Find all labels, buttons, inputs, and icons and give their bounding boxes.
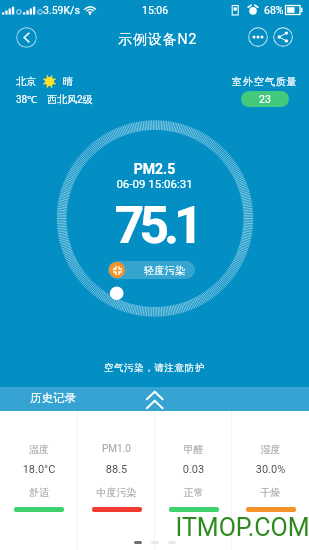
button[interactable]: 轻度污染 (108, 261, 195, 279)
staticText: 西北风2级 (47, 93, 93, 106)
staticText: 干燥 (232, 486, 309, 499)
staticText: 历史记录 (30, 391, 76, 405)
staticText: 18.0°C (0, 463, 78, 476)
button[interactable]: Share (273, 27, 293, 47)
staticText: 0.03 (155, 463, 232, 476)
staticText: 15:06 (142, 4, 169, 16)
staticText: 室外空气质量 (232, 75, 298, 88)
button[interactable]: PM1.0 (78, 411, 155, 550)
staticText: 75.1 (2, 195, 309, 256)
button[interactable]: 甲醛 (155, 411, 232, 550)
staticText: 温度 (0, 443, 78, 456)
staticText: 示例设备N2 (118, 31, 198, 49)
staticText: 23 (259, 93, 271, 105)
button[interactable]: 湿度 (232, 411, 309, 550)
staticText: 晴 (63, 75, 73, 88)
staticText: 正常 (155, 486, 232, 499)
button[interactable]: 历史记录 (0, 387, 309, 411)
staticText: 06-09 15:06:31 (0, 177, 309, 190)
staticText: 88.5 (78, 463, 155, 476)
staticText: 空气污染，请注意防护 (0, 362, 309, 374)
staticText: 38℃ (16, 92, 38, 106)
button[interactable]: More options (248, 27, 268, 47)
staticText: 30.0% (232, 463, 309, 476)
button[interactable]: 温度 (0, 411, 78, 550)
staticText: PM2.5 (0, 161, 309, 177)
staticText: 中度污染 (78, 486, 155, 499)
staticText: 68% (264, 4, 284, 16)
staticText: 甲醛 (155, 443, 232, 456)
staticText: 舒适 (0, 486, 78, 499)
staticText: 轻度污染 (144, 264, 186, 277)
staticText: 3.59K/s (43, 4, 80, 16)
button[interactable]: Back (16, 27, 37, 48)
staticText: 湿度 (232, 443, 309, 456)
staticText: 北京 (16, 75, 36, 88)
staticText: ITMOP.COM (88, 513, 309, 542)
staticText: PM1.0 (78, 443, 155, 455)
